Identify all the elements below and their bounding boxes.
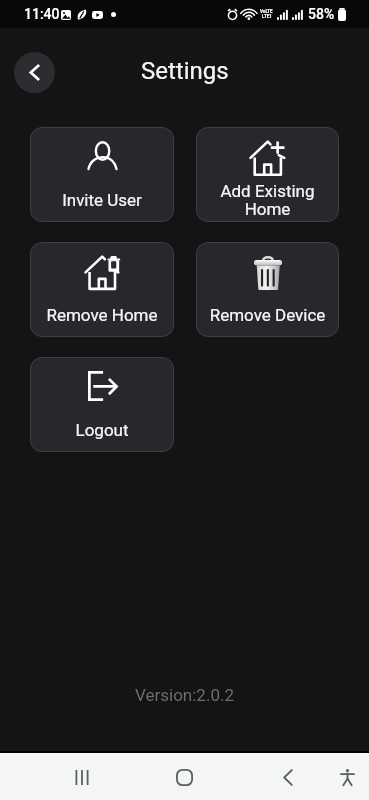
staticText: Remove Device [196, 305, 339, 325]
button[interactable]: Logout [30, 357, 174, 452]
staticText: Add Existing Home [196, 181, 339, 219]
button[interactable]: Invite User [30, 127, 174, 222]
button[interactable]: Home [164, 757, 204, 797]
staticText: 11:40 [24, 6, 60, 22]
button[interactable]: Back [14, 52, 55, 93]
button[interactable]: Remove Device [196, 242, 339, 337]
button[interactable]: Recent apps [62, 757, 102, 797]
staticText: Version:2.0.2 [0, 685, 369, 705]
staticText: Invite User [30, 190, 174, 210]
staticText: VoLTE [260, 9, 273, 14]
staticText: Logout [30, 420, 174, 440]
button[interactable]: Add Existing Home [196, 127, 339, 222]
staticText: 58% [308, 6, 335, 22]
button[interactable]: Remove Home [30, 242, 174, 337]
button[interactable]: Accessibility [327, 757, 367, 797]
staticText: Settings [141, 57, 229, 85]
button[interactable]: Back [268, 757, 308, 797]
staticText: Remove Home [30, 305, 174, 325]
staticText: LTE1 [262, 14, 272, 19]
